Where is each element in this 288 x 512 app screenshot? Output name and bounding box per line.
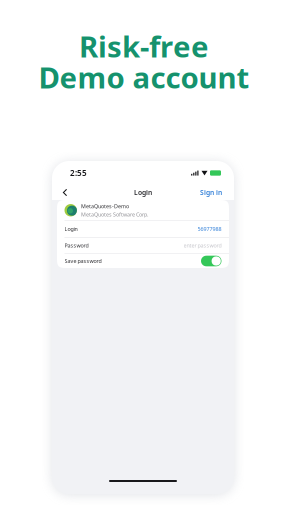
button[interactable]: Back (58, 185, 72, 199)
staticText: Sign in (200, 188, 222, 197)
staticText: 56977988 (197, 225, 221, 233)
staticText: 2:55 (70, 168, 87, 178)
staticText: Demo account (38, 57, 249, 96)
staticText: MetaQuotes-Demo (81, 203, 129, 210)
staticText: Login (134, 188, 152, 197)
staticText: Save password (64, 257, 101, 265)
staticText: MetaQuotes Software Corp. (81, 211, 148, 218)
button[interactable]: MetaQuotes-Demo (57, 200, 229, 220)
button[interactable]: Login (57, 221, 229, 237)
staticText: Risk-free (79, 26, 209, 65)
button[interactable]: Save password (57, 254, 229, 268)
staticText: Password (64, 242, 88, 249)
button[interactable]: Password (57, 237, 229, 253)
staticText: Login (64, 225, 77, 233)
staticText: enter password (183, 242, 221, 249)
button[interactable]: Sign in (200, 185, 222, 199)
